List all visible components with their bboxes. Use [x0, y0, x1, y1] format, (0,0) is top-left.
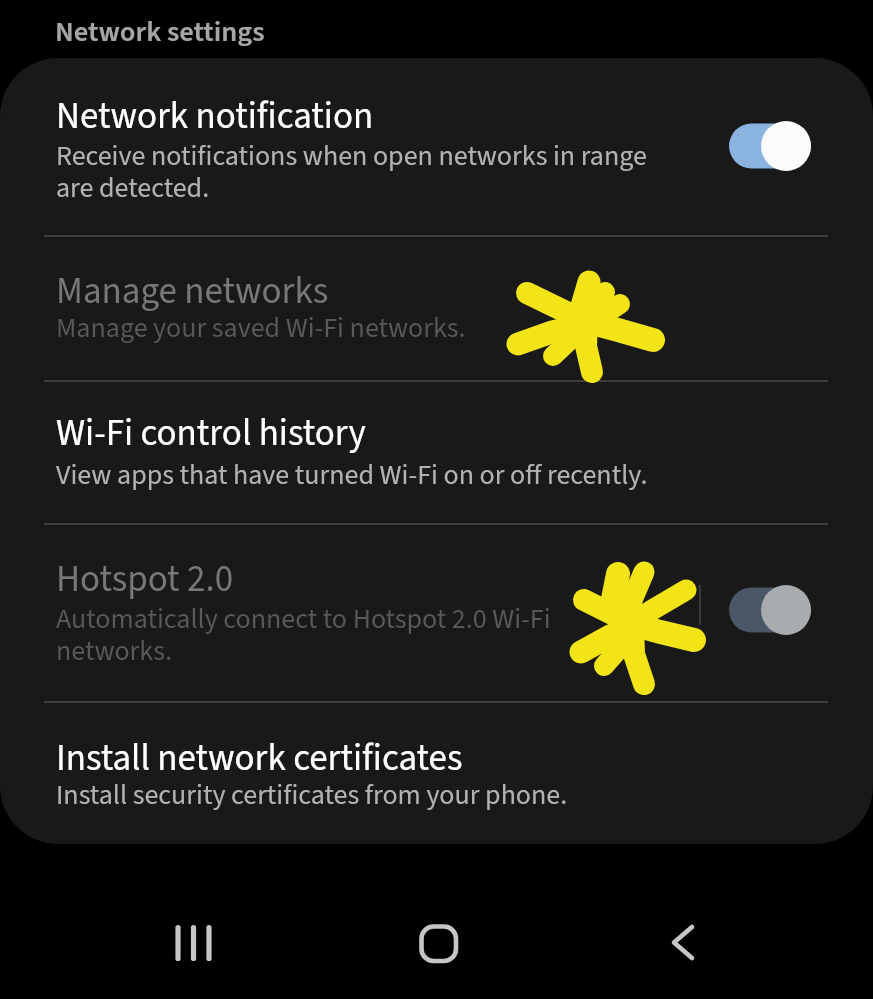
button[interactable]: Back [645, 905, 721, 981]
staticText: Network settings [55, 12, 265, 53]
button[interactable]: Switch on [728, 119, 814, 173]
button[interactable]: Wi-Fi control history [0, 382, 873, 523]
staticText: View apps that have turned Wi-Fi on or o… [56, 455, 648, 495]
staticText: Install security certificates from your … [56, 775, 568, 815]
button[interactable]: Hotspot 2.0 [0, 525, 873, 701]
button[interactable]: Manage networks [0, 237, 873, 380]
staticText: Manage networks [56, 265, 329, 318]
button[interactable]: Recents [155, 905, 231, 981]
staticText: Automatically connect to Hotspot 2.0 Wi-… [56, 599, 586, 671]
button[interactable]: Install network certificates [0, 703, 873, 843]
staticText: Network notification [56, 90, 374, 143]
staticText: Wi-Fi control history [56, 407, 366, 460]
staticText: Manage your saved Wi-Fi networks. [56, 308, 466, 348]
button[interactable]: Switch off [728, 583, 814, 637]
staticText: Receive notifications when open networks… [56, 136, 676, 208]
staticText: Install network certificates [56, 732, 463, 785]
button[interactable]: Network notification [0, 75, 873, 235]
staticText: Hotspot 2.0 [56, 553, 234, 606]
button[interactable]: Home [400, 905, 476, 981]
